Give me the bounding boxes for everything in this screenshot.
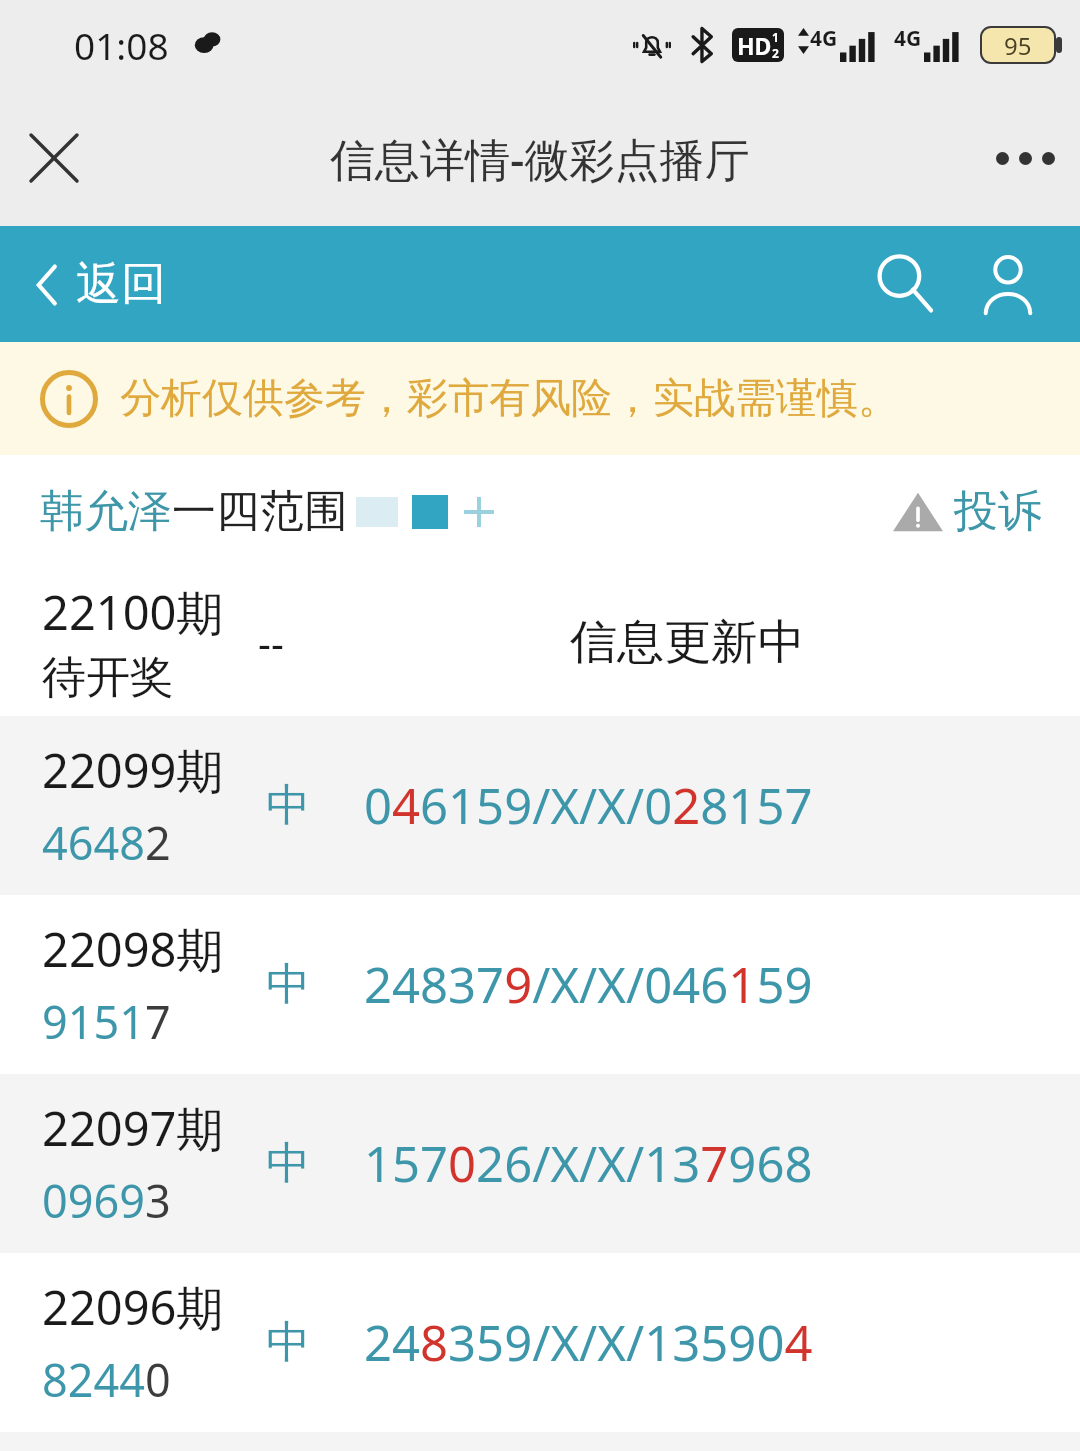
button[interactable]: 22099期: [0, 716, 1080, 895]
staticText: 22100期: [42, 580, 224, 644]
staticText: 22096期: [42, 1275, 224, 1339]
staticText: 22099期: [42, 738, 224, 802]
staticText: 22097期: [42, 1096, 224, 1160]
staticText: 4G: [894, 24, 922, 53]
staticText: 09693: [42, 1170, 171, 1231]
staticText: 248359/X/X/135904: [364, 1309, 813, 1376]
staticText: 1: [772, 29, 779, 45]
staticText: 46482: [42, 812, 171, 873]
staticText: 分析仅供参考，彩市有风险，实战需谨慎。: [120, 373, 899, 425]
button[interactable]: Account: [958, 234, 1058, 334]
staticText: 中: [266, 957, 310, 1012]
staticText: 22098期: [42, 917, 224, 981]
button[interactable]: More options: [970, 103, 1080, 213]
button[interactable]: 22100期: [0, 568, 1080, 716]
button[interactable]: 韩允泽一四范围: [40, 484, 494, 539]
button[interactable]: 返回: [34, 256, 166, 313]
staticText: 中: [266, 1315, 310, 1370]
staticText: --: [258, 615, 284, 669]
staticText: 046159/X/X/028157: [364, 772, 813, 839]
button[interactable]: 22098期: [0, 895, 1080, 1074]
staticText: 95: [1004, 29, 1032, 62]
staticText: 91517: [42, 991, 171, 1052]
staticText: 信息详情-微彩点播厅: [330, 128, 750, 189]
staticText: 中: [266, 778, 310, 833]
staticText: 157026/X/X/137968: [364, 1130, 813, 1197]
button[interactable]: 22097期: [0, 1074, 1080, 1253]
staticText: 中: [266, 1136, 310, 1191]
staticText: 2: [772, 45, 779, 61]
staticText: 信息更新中: [570, 613, 805, 672]
staticText: 韩允泽一四范围: [40, 484, 348, 539]
staticText: 投诉: [954, 484, 1042, 539]
staticText: 返回: [76, 256, 166, 313]
button[interactable]: 22096期: [0, 1253, 1080, 1432]
button[interactable]: Close: [0, 104, 108, 212]
button[interactable]: Search: [854, 232, 958, 336]
button[interactable]: 投诉: [892, 484, 1042, 539]
staticText: HD: [737, 30, 772, 61]
staticText: 4G: [810, 24, 838, 53]
staticText: 82440: [42, 1349, 171, 1410]
staticText: 01:08: [74, 20, 169, 70]
staticText: 248379/X/X/046159: [364, 951, 813, 1018]
staticText: 待开奖: [42, 650, 174, 705]
